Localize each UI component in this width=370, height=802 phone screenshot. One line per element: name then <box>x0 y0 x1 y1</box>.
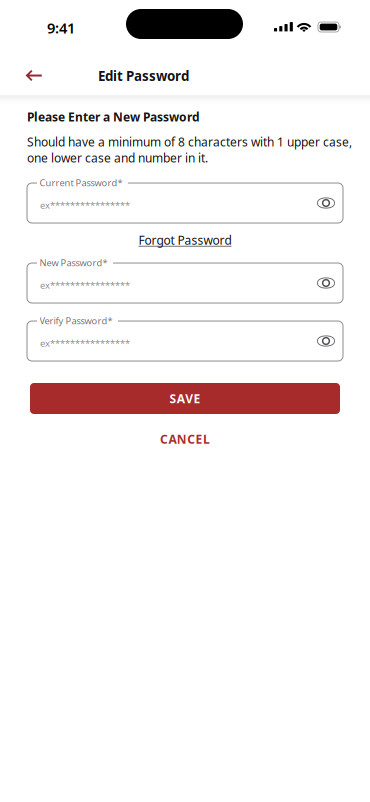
staticText: New Password* <box>39 256 107 269</box>
button[interactable]: Show password <box>309 186 343 220</box>
button[interactable]: SAVE <box>30 383 340 414</box>
staticText: Current Password* <box>39 176 122 189</box>
staticText: ex**************** <box>40 337 130 349</box>
staticText: CANCEL <box>160 431 210 447</box>
button[interactable]: Back <box>12 53 56 97</box>
staticText: Edit Password <box>98 67 189 85</box>
staticText: ex**************** <box>40 279 130 291</box>
button[interactable]: Show password <box>309 266 343 300</box>
staticText: Verify Password* <box>39 314 112 327</box>
staticText: Should have a minimum of 8 characters wi… <box>27 134 352 166</box>
staticText: Please Enter a New Password <box>27 109 200 125</box>
staticText: SAVE <box>169 390 201 406</box>
staticText: Forgot Password <box>138 232 231 248</box>
staticText: 9:41 <box>47 18 75 37</box>
button[interactable]: Show password <box>309 324 343 358</box>
staticText: ex**************** <box>40 199 130 211</box>
button[interactable]: CANCEL <box>125 427 245 451</box>
button[interactable]: Forgot Password <box>120 230 250 250</box>
